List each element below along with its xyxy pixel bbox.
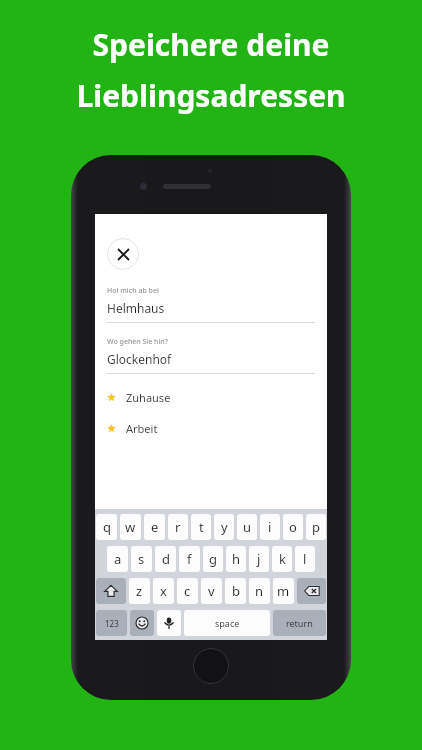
button[interactable]: h (226, 546, 246, 572)
button[interactable]: return (273, 610, 326, 636)
button[interactable]: k (272, 546, 292, 572)
staticText: Hol mich ab bei (107, 286, 159, 296)
staticText: m (277, 582, 290, 600)
button[interactable]: x (153, 578, 174, 604)
button[interactable]: c (177, 578, 198, 604)
staticText: l (303, 550, 307, 568)
button[interactable]: n (249, 578, 270, 604)
button[interactable]: s (131, 546, 152, 572)
button[interactable]: r (168, 514, 188, 540)
staticText: y (221, 518, 228, 536)
staticText: r (175, 518, 181, 536)
button[interactable]: g (203, 546, 223, 572)
staticText: t (199, 518, 204, 536)
staticText: s (138, 550, 145, 568)
button[interactable]: p (306, 514, 326, 540)
button[interactable]: Hol mich ab bei (107, 286, 315, 323)
button[interactable]: o (283, 514, 303, 540)
staticText: d (162, 550, 170, 568)
staticText: x (160, 582, 167, 600)
staticText: p (312, 518, 320, 536)
staticText: z (136, 582, 143, 600)
staticText: b (232, 582, 240, 600)
button[interactable]: d (155, 546, 176, 572)
button[interactable]: Close (107, 238, 139, 270)
staticText: k (279, 550, 286, 568)
button[interactable]: Backspace (297, 578, 326, 604)
staticText: Glockenhof (107, 351, 172, 367)
button[interactable]: t (191, 514, 211, 540)
staticText: u (243, 518, 252, 536)
staticText: Speichere deine (92, 24, 330, 65)
staticText: n (255, 582, 264, 600)
staticText: Helmhaus (107, 300, 165, 316)
staticText: Lieblingsadressen (76, 75, 346, 116)
staticText: w (125, 518, 136, 536)
staticText: return (286, 617, 313, 629)
staticText: h (232, 550, 241, 568)
button[interactable]: Emoji (130, 610, 154, 636)
button[interactable]: y (214, 514, 234, 540)
staticText: a (114, 550, 122, 568)
button[interactable]: b (225, 578, 246, 604)
staticText: g (209, 550, 217, 568)
staticText: e (151, 518, 159, 536)
button[interactable]: q (96, 514, 117, 540)
button[interactable]: 123 (96, 610, 127, 636)
button[interactable]: i (260, 514, 280, 540)
button[interactable]: space (184, 610, 270, 636)
button[interactable]: e (144, 514, 165, 540)
button[interactable]: Zuhause (107, 390, 315, 405)
staticText: space (215, 617, 240, 629)
staticText: q (103, 518, 111, 536)
button[interactable]: a (107, 546, 128, 572)
button[interactable]: w (120, 514, 141, 540)
staticText: o (289, 518, 297, 536)
button[interactable]: l (295, 546, 315, 572)
button[interactable]: f (179, 546, 200, 572)
button[interactable]: Wo gehen Sie hin? (107, 337, 315, 374)
button[interactable]: m (273, 578, 294, 604)
staticText: j (257, 550, 261, 568)
staticText: v (208, 582, 215, 600)
staticText: f (187, 550, 192, 568)
staticText: c (184, 582, 191, 600)
button[interactable]: v (201, 578, 222, 604)
staticText: Wo gehen Sie hin? (107, 337, 168, 347)
staticText: 123 (105, 618, 119, 629)
button[interactable]: Arbeit (107, 421, 315, 436)
button[interactable]: j (249, 546, 269, 572)
staticText: Arbeit (126, 421, 158, 436)
button[interactable]: Home (193, 648, 229, 684)
button[interactable]: Shift (96, 578, 126, 604)
button[interactable]: Dictate (157, 610, 181, 636)
button[interactable]: z (129, 578, 150, 604)
staticText: i (268, 518, 272, 536)
staticText: Zuhause (126, 390, 171, 405)
button[interactable]: u (237, 514, 257, 540)
